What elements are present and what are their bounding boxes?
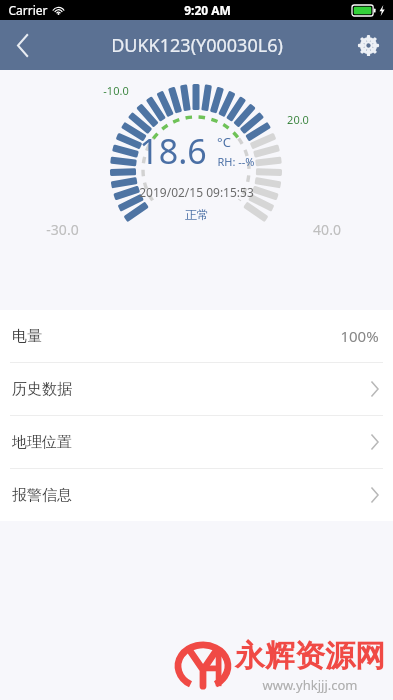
staticText: 电量 [12,327,42,346]
staticText: 2019/02/15 09:15:53 [139,184,254,200]
button[interactable]: 历史数据 [0,363,393,415]
staticText: 40.0 [313,220,341,239]
button[interactable]: Settings [343,20,393,70]
staticText: 正常 [185,207,209,222]
staticText: 永辉资源网 [235,637,385,675]
staticText: DUKK123(Y00030L6) [111,33,283,58]
button[interactable]: 报警信息 [0,469,393,521]
staticText: -30.0 [46,220,79,239]
staticText: 18.6 [139,128,207,174]
staticText: 历史数据 [12,380,72,399]
staticText: Carrier [8,2,48,18]
staticText: 报警信息 [12,486,72,505]
staticText: °C [217,133,231,151]
staticText: 20.0 [287,112,309,127]
staticText: 地理位置 [12,433,72,452]
button[interactable]: Back [0,20,46,70]
staticText: 9:20 AM [184,2,231,18]
staticText: RH: --% [217,154,255,169]
button[interactable]: 地理位置 [0,416,393,468]
staticText: -10.0 [103,83,129,98]
staticText: 100% [340,326,379,346]
button[interactable]: 电量 [0,310,393,362]
staticText: www.yhkjjj.com [262,676,358,694]
